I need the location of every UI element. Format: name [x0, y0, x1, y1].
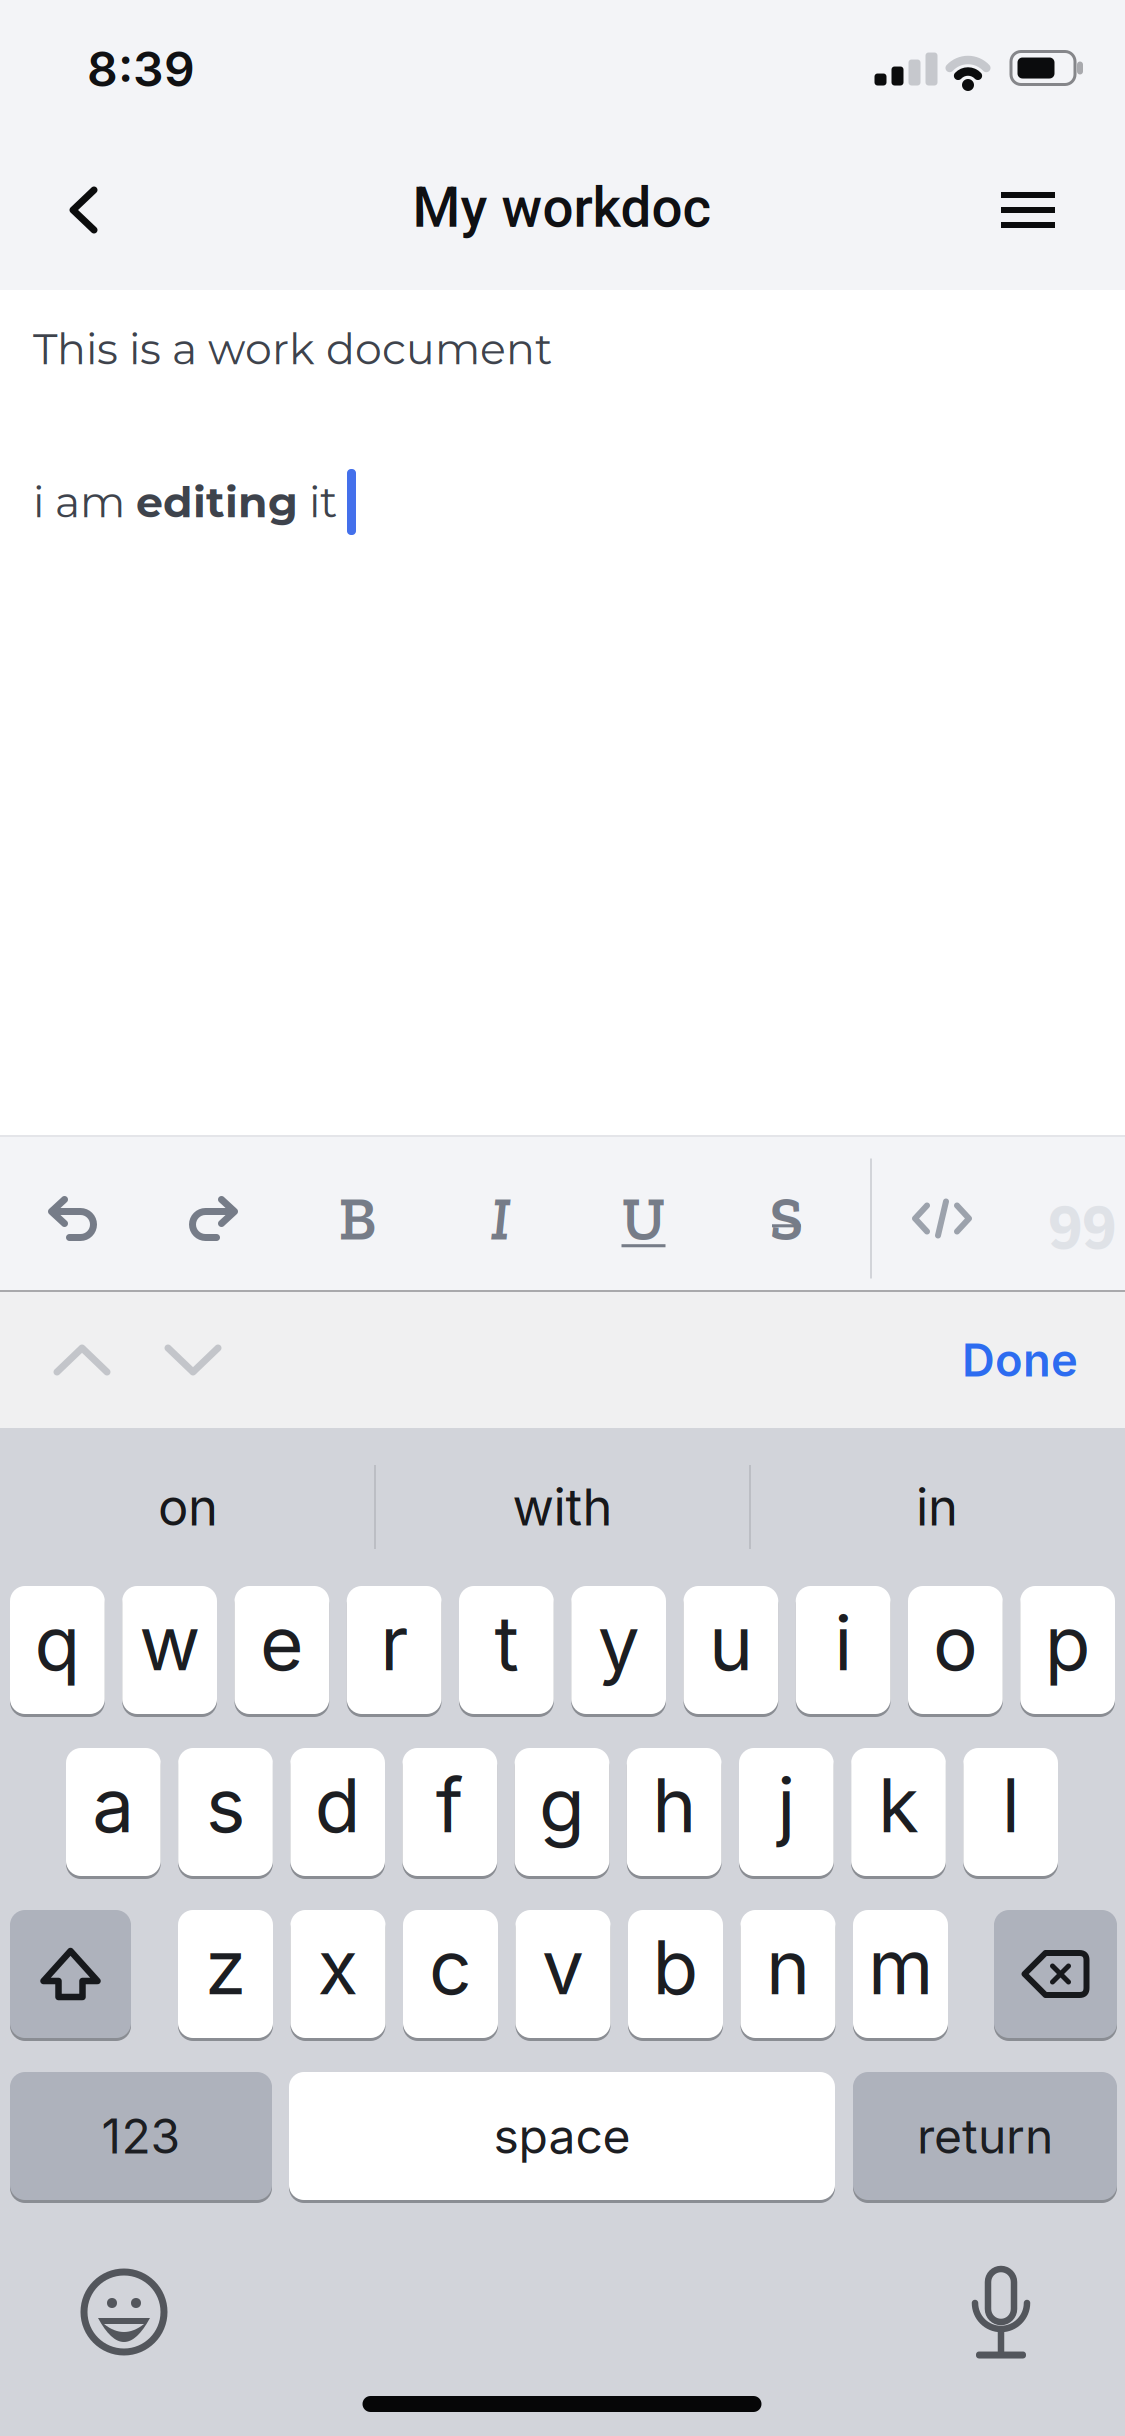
button[interactable]: i: [796, 1586, 891, 1714]
button[interactable]: s: [178, 1748, 273, 1876]
staticText: i am editing it: [33, 477, 337, 527]
button[interactable]: y: [571, 1586, 666, 1714]
staticText: in: [916, 1476, 958, 1538]
button[interactable]: n: [740, 1910, 835, 2038]
button[interactable]: k: [851, 1748, 946, 1876]
button[interactable]: Italic: [429, 1143, 572, 1293]
button[interactable]: Strikethrough: [715, 1143, 858, 1293]
button[interactable]: j: [739, 1748, 834, 1876]
button[interactable]: w: [122, 1586, 217, 1714]
staticText: 99: [1048, 1180, 1116, 1257]
button[interactable]: t: [459, 1586, 554, 1714]
button[interactable]: Code: [872, 1143, 1012, 1293]
staticText: This is a work document: [33, 323, 552, 375]
staticText: return: [917, 2107, 1053, 2165]
button[interactable]: space: [289, 2072, 835, 2200]
staticText: d: [315, 1760, 361, 1850]
button[interactable]: v: [515, 1910, 610, 2038]
button[interactable]: l: [963, 1748, 1058, 1876]
button[interactable]: q: [10, 1586, 105, 1714]
button[interactable]: x: [290, 1910, 385, 2038]
staticText: i: [834, 1598, 852, 1688]
button[interactable]: Emoji: [62, 2250, 186, 2374]
button[interactable]: d: [290, 1748, 385, 1876]
staticText: j: [777, 1760, 795, 1850]
staticText: q: [34, 1598, 80, 1688]
button[interactable]: Quote: [1012, 1143, 1125, 1293]
staticText: x: [317, 1922, 358, 2012]
button[interactable]: r: [347, 1586, 442, 1714]
staticText: s: [206, 1760, 245, 1850]
staticText: 8:39: [87, 40, 195, 98]
button[interactable]: b: [628, 1910, 723, 2038]
staticText: a: [92, 1760, 134, 1850]
button[interactable]: p: [1020, 1586, 1115, 1714]
staticText: t: [494, 1598, 518, 1688]
button[interactable]: a: [66, 1748, 161, 1876]
button[interactable]: Shift: [10, 1910, 131, 2038]
staticText: S: [769, 1182, 803, 1255]
staticText: z: [205, 1922, 246, 2012]
button[interactable]: 123: [10, 2072, 272, 2200]
staticText: I: [490, 1182, 510, 1255]
staticText: k: [878, 1760, 919, 1850]
button[interactable]: Dictation: [951, 2246, 1051, 2376]
button[interactable]: f: [402, 1748, 497, 1876]
staticText: y: [598, 1598, 640, 1688]
staticText: b: [652, 1922, 698, 2012]
button[interactable]: c: [403, 1910, 498, 2038]
button[interactable]: in: [750, 1447, 1124, 1567]
button[interactable]: m: [853, 1910, 948, 2038]
button[interactable]: u: [683, 1586, 778, 1714]
staticText: e: [260, 1598, 304, 1688]
button[interactable]: e: [234, 1586, 329, 1714]
staticText: w: [139, 1598, 200, 1688]
staticText: on: [158, 1476, 218, 1538]
button[interactable]: h: [627, 1748, 721, 1876]
button[interactable]: with: [375, 1447, 750, 1567]
staticText: c: [429, 1922, 472, 2012]
button[interactable]: Redo: [143, 1143, 286, 1293]
staticText: o: [933, 1598, 978, 1688]
staticText: m: [868, 1922, 933, 2012]
staticText: My workdoc: [412, 176, 711, 240]
staticText: r: [380, 1598, 408, 1688]
staticText: U: [621, 1182, 665, 1255]
button[interactable]: Done: [962, 1333, 1125, 1387]
staticText: u: [709, 1598, 753, 1688]
button[interactable]: g: [515, 1748, 609, 1876]
staticText: with: [512, 1476, 612, 1538]
button[interactable]: Back: [41, 168, 127, 252]
button[interactable]: Menu: [981, 172, 1075, 248]
staticText: n: [766, 1922, 810, 2012]
staticText: h: [652, 1760, 696, 1850]
button[interactable]: z: [178, 1910, 273, 2038]
button[interactable]: Undo: [0, 1143, 143, 1293]
button[interactable]: Delete: [994, 1910, 1117, 2038]
button[interactable]: Underline: [572, 1143, 715, 1293]
staticText: l: [1002, 1760, 1020, 1850]
button[interactable]: o: [908, 1586, 1003, 1714]
staticText: 123: [101, 2107, 180, 2165]
button[interactable]: on: [1, 1447, 375, 1567]
staticText: space: [493, 2107, 630, 2165]
staticText: B: [338, 1182, 376, 1255]
button[interactable]: return: [853, 2072, 1117, 2200]
staticText: g: [539, 1760, 585, 1850]
button[interactable]: Previous field: [0, 1345, 109, 1375]
staticText: f: [436, 1760, 464, 1850]
staticText: v: [542, 1922, 584, 2012]
button[interactable]: Bold: [286, 1143, 429, 1293]
button[interactable]: Next field: [109, 1345, 220, 1375]
staticText: Done: [962, 1333, 1078, 1387]
staticText: p: [1045, 1598, 1091, 1688]
